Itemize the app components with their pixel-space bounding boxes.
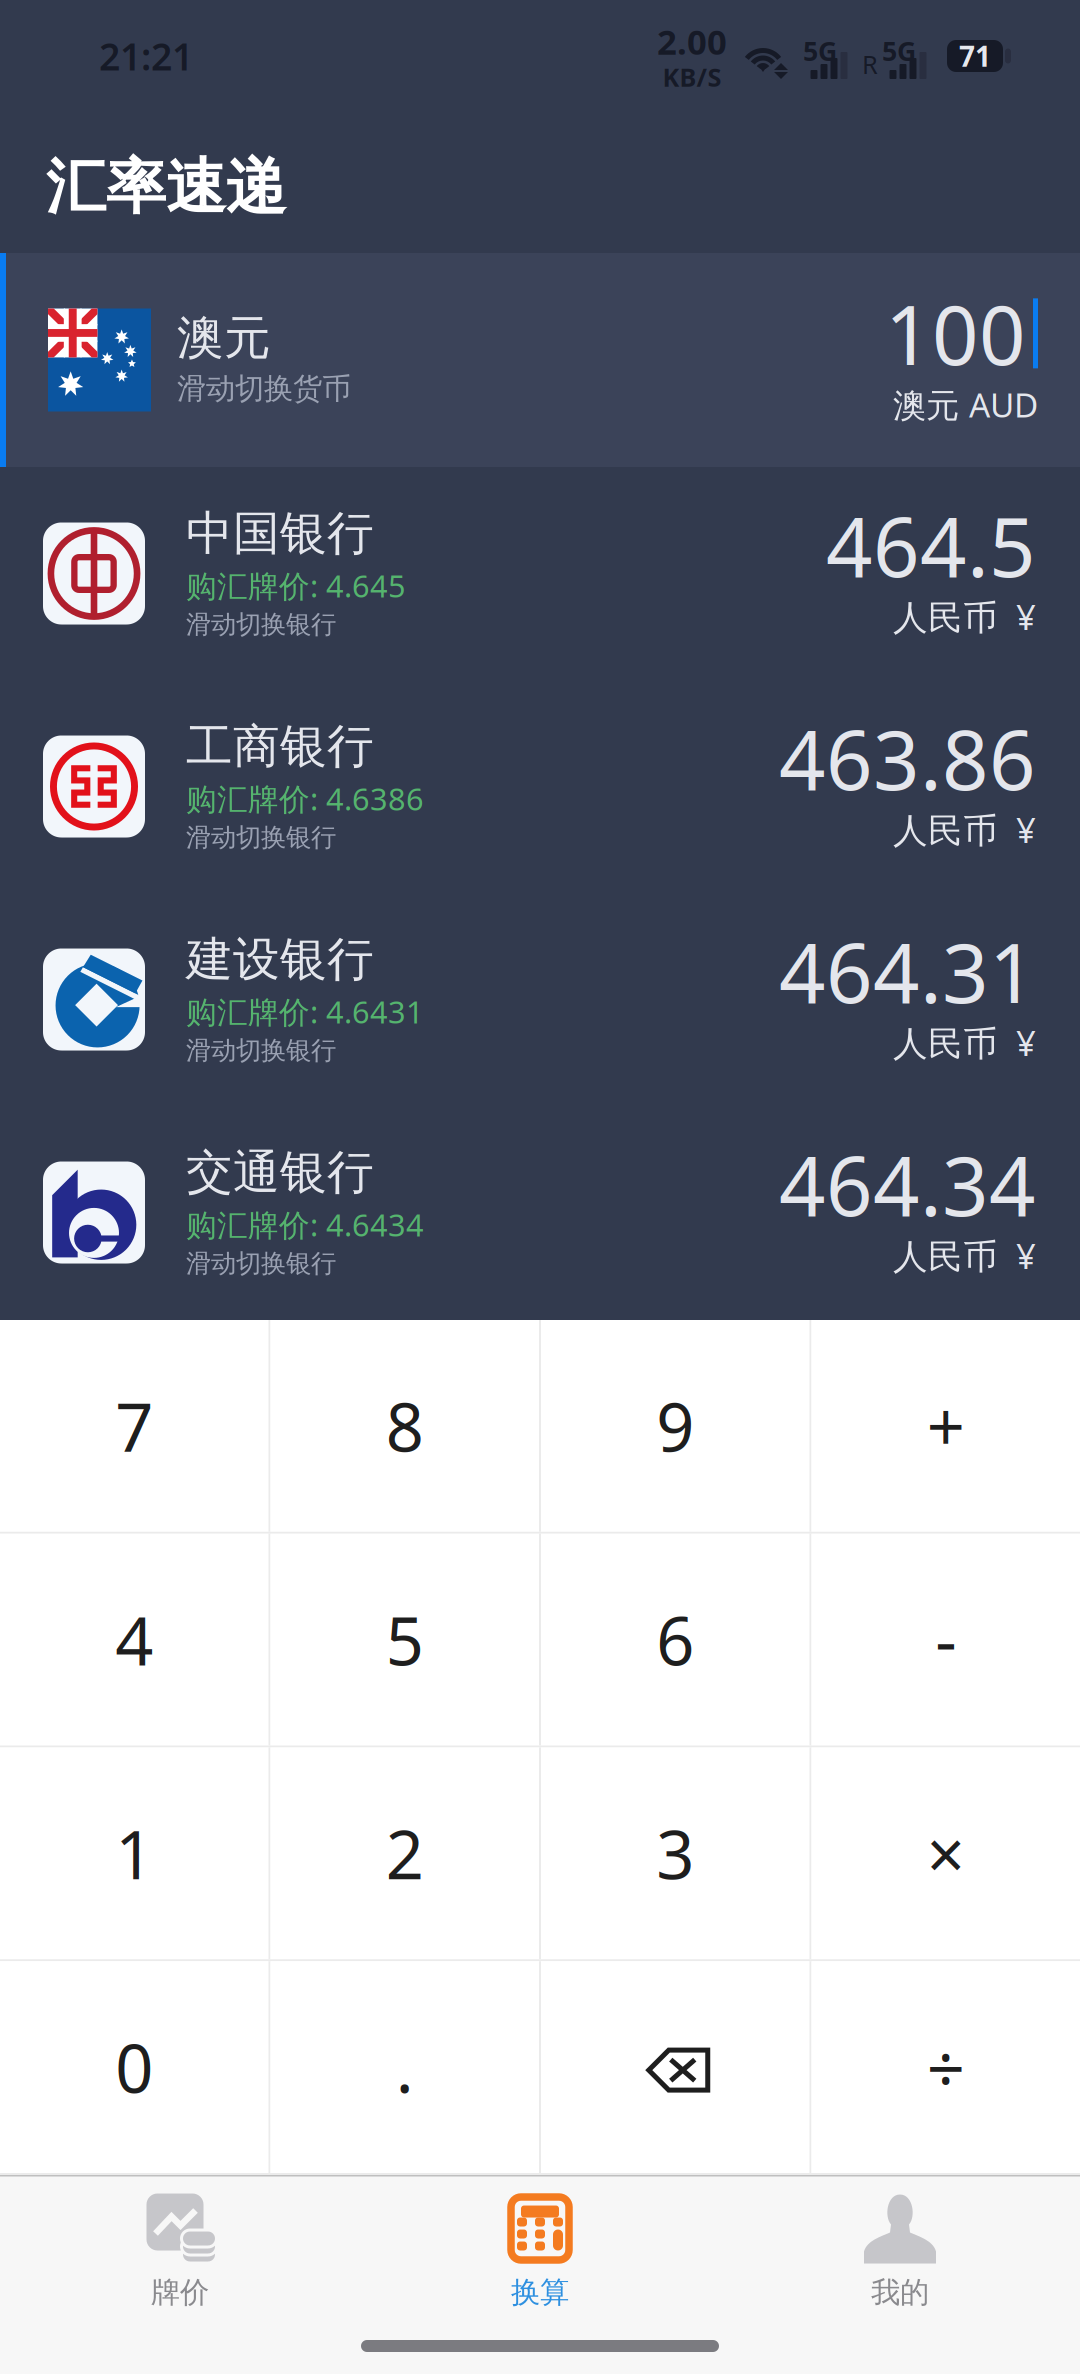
button[interactable]: ÷: [811, 1961, 1080, 2173]
button[interactable]: 1: [0, 1747, 268, 1959]
staticText: 4: [115, 1595, 153, 1684]
staticText: 8: [386, 1382, 424, 1470]
staticText: 购汇牌价: 4.6386: [186, 778, 424, 819]
staticText: 5G: [882, 33, 916, 68]
button[interactable]: 4: [0, 1534, 268, 1746]
button[interactable]: 0: [0, 1961, 268, 2173]
staticText: 建设银行: [186, 931, 374, 988]
button[interactable]: ×: [811, 1747, 1080, 1959]
staticText: 464.34: [779, 1130, 1036, 1238]
staticText: 71: [959, 37, 991, 75]
staticText: 中国银行: [186, 505, 374, 562]
staticText: 1: [115, 1809, 153, 1898]
button[interactable]: -: [811, 1534, 1080, 1746]
staticText: 人民币 ¥: [893, 1232, 1036, 1278]
button[interactable]: 2: [270, 1747, 539, 1959]
staticText: 人民币 ¥: [893, 593, 1036, 639]
staticText: KB/S: [662, 60, 721, 94]
button[interactable]: 9: [541, 1320, 809, 1532]
staticText: 464.5: [826, 491, 1036, 599]
staticText: 21:21: [99, 31, 193, 81]
button[interactable]: 工商银行: [0, 680, 1080, 893]
staticText: 100: [885, 279, 1026, 387]
staticText: 6: [656, 1595, 694, 1684]
button[interactable]: 我的: [720, 2176, 1080, 2321]
button[interactable]: 中国银行: [0, 467, 1080, 680]
staticText: 滑动切换银行: [186, 822, 336, 853]
button[interactable]: 换算: [360, 2176, 720, 2321]
staticText: 滑动切换货币: [177, 371, 351, 407]
staticText: 购汇牌价: 4.6434: [186, 1204, 424, 1245]
staticText: R: [862, 47, 878, 81]
button[interactable]: 牌价: [0, 2176, 360, 2321]
staticText: 2: [386, 1809, 424, 1898]
button[interactable]: 7: [0, 1320, 268, 1532]
staticText: ×: [927, 1809, 965, 1898]
staticText: 滑动切换银行: [186, 609, 336, 640]
button[interactable]: 建设银行: [0, 893, 1080, 1106]
button[interactable]: 澳元: [0, 253, 1080, 467]
staticText: 464.31: [779, 917, 1036, 1025]
staticText: 人民币 ¥: [893, 1019, 1036, 1065]
staticText: 滑动切换银行: [186, 1035, 336, 1066]
staticText: 0: [115, 2023, 153, 2111]
staticText: ÷: [927, 2023, 965, 2111]
staticText: 澳元 AUD: [893, 382, 1038, 427]
staticText: 5: [386, 1595, 424, 1684]
button[interactable]: +: [811, 1320, 1080, 1532]
staticText: 换算: [511, 2274, 569, 2310]
staticText: 购汇牌价: 4.645: [186, 565, 406, 606]
staticText: 购汇牌价: 4.6431: [186, 991, 424, 1032]
staticText: 2.00: [657, 18, 727, 64]
staticText: 澳元: [177, 309, 271, 367]
button[interactable]: 5: [270, 1534, 539, 1746]
button[interactable]: .: [270, 1961, 539, 2173]
button[interactable]: 交通银行: [0, 1106, 1080, 1319]
staticText: 牌价: [151, 2274, 209, 2310]
staticText: 5G: [803, 33, 837, 68]
button[interactable]: 3: [541, 1747, 809, 1959]
staticText: 汇率速递: [46, 150, 286, 224]
button[interactable]: 6: [541, 1534, 809, 1746]
staticText: 9: [656, 1382, 694, 1470]
staticText: 滑动切换银行: [186, 1248, 336, 1279]
staticText: 我的: [871, 2274, 929, 2310]
staticText: 工商银行: [186, 718, 374, 775]
staticText: 7: [115, 1382, 153, 1470]
staticText: 3: [656, 1809, 694, 1898]
button[interactable]: Delete: [541, 1961, 809, 2173]
staticText: 人民币 ¥: [893, 806, 1036, 852]
staticText: .: [396, 2023, 414, 2111]
staticText: 463.86: [779, 704, 1036, 812]
button[interactable]: 8: [270, 1320, 539, 1532]
staticText: +: [927, 1382, 965, 1470]
staticText: 交通银行: [186, 1144, 374, 1201]
staticText: -: [935, 1595, 956, 1684]
